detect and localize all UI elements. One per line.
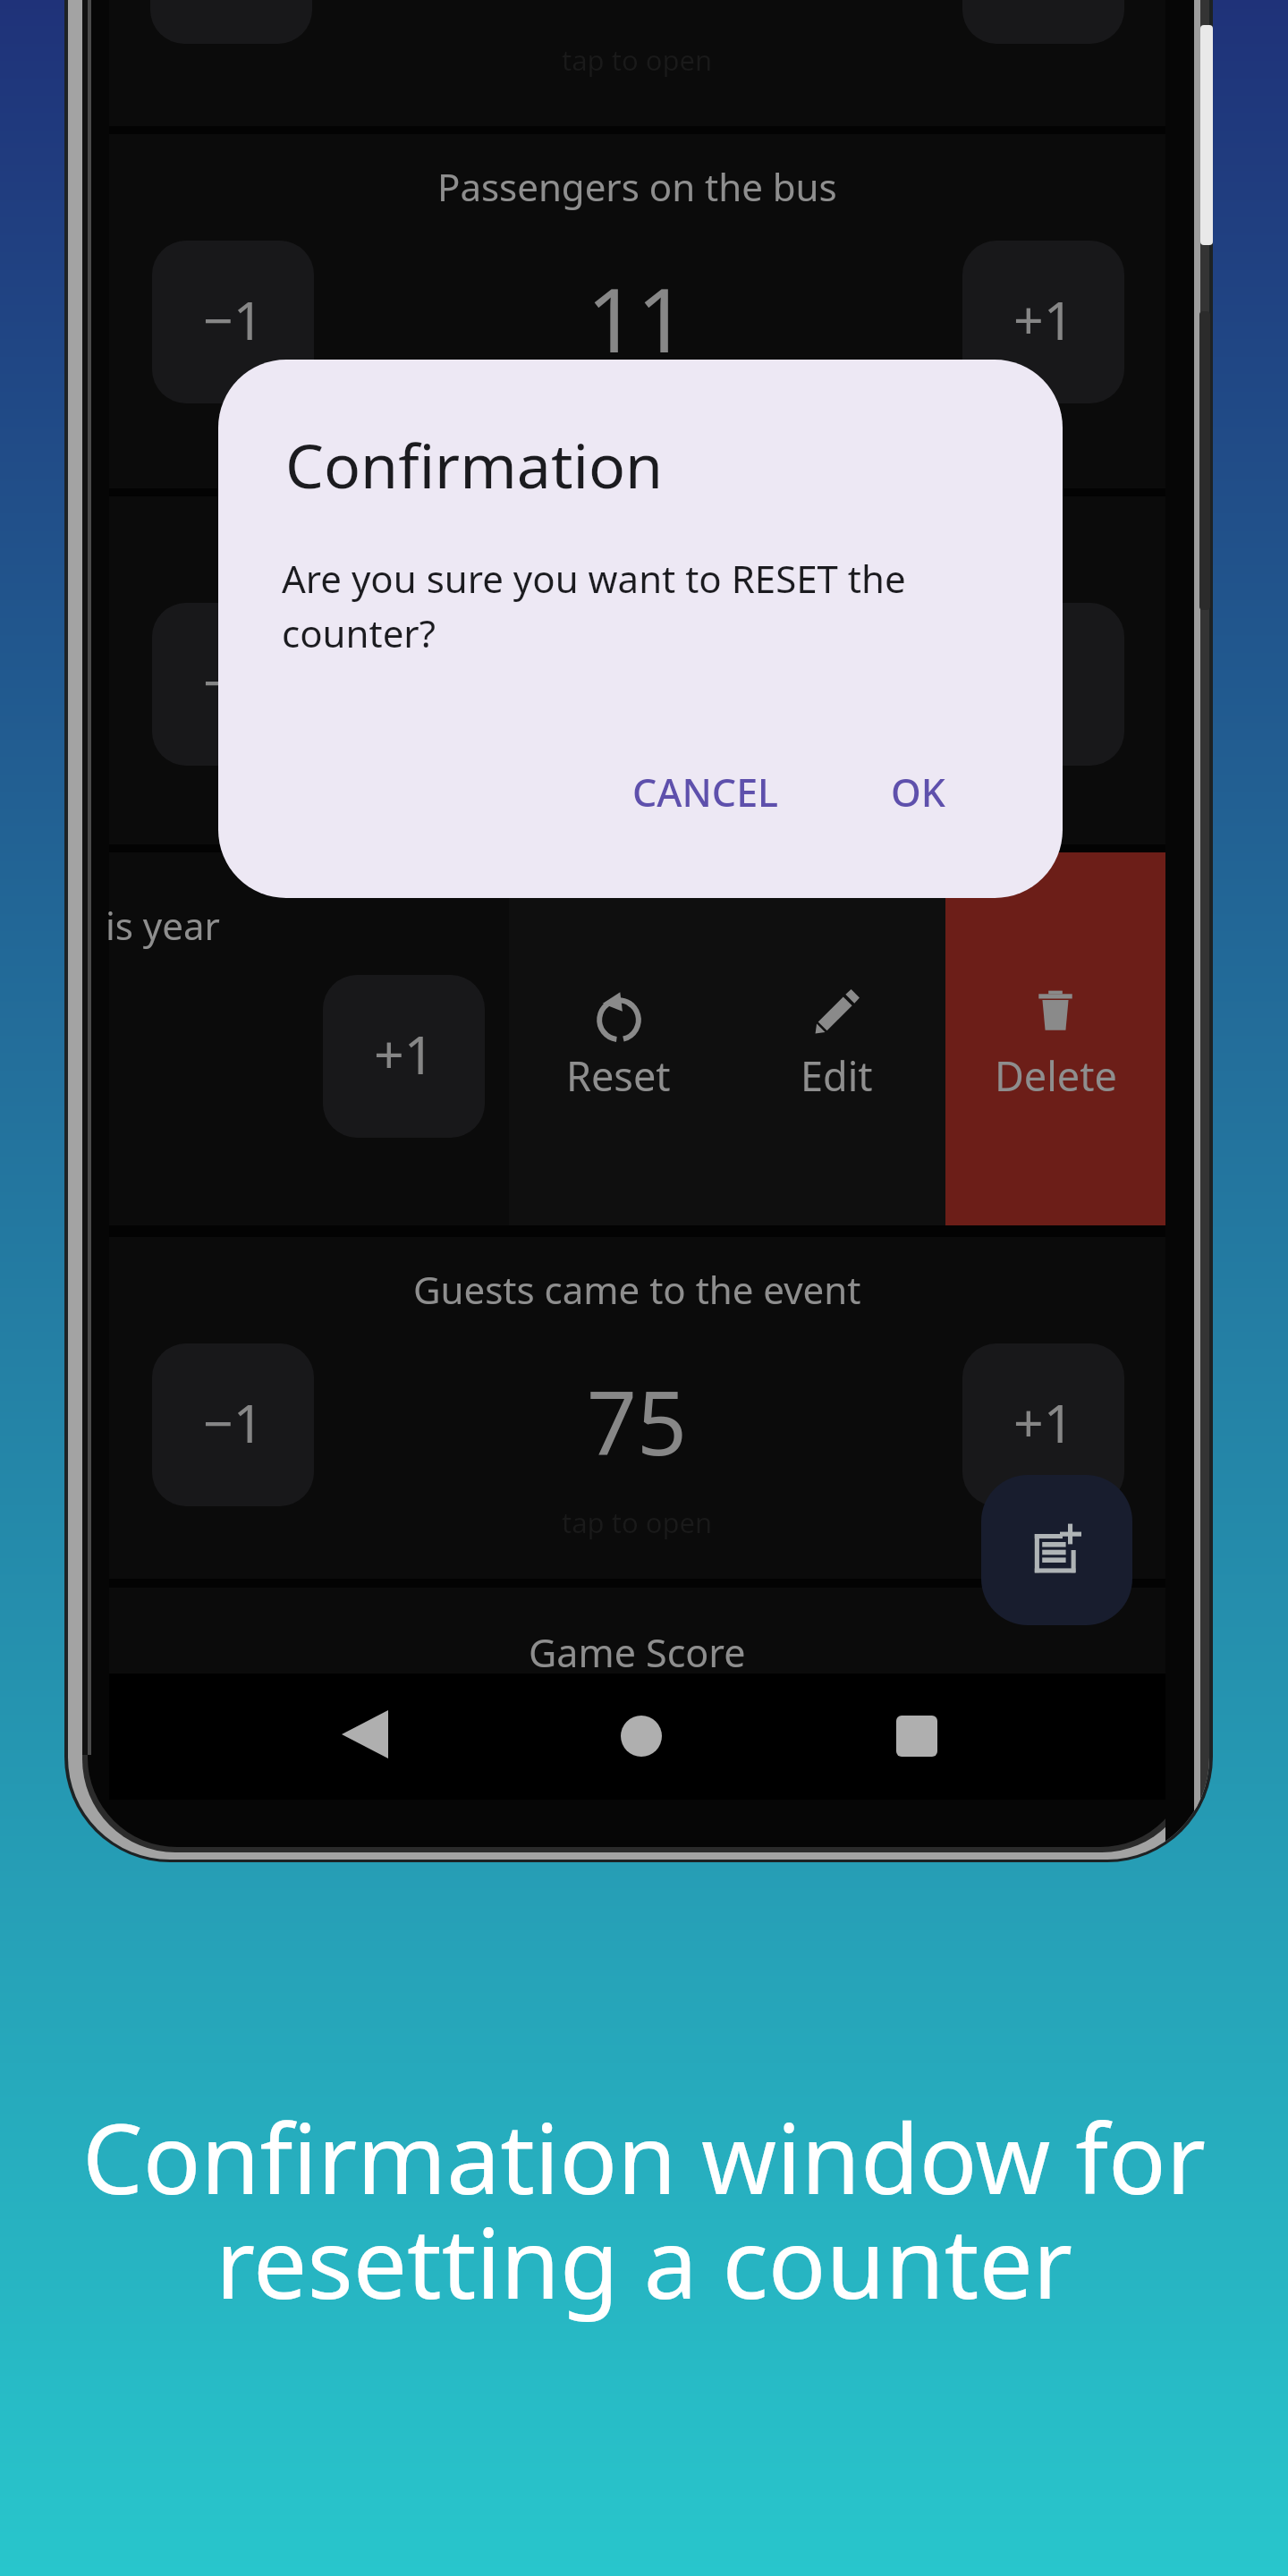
staticText: +1 <box>1013 1386 1074 1458</box>
staticText: −1 <box>203 646 264 717</box>
button[interactable]: Home <box>583 1678 699 1794</box>
button[interactable]: is year <box>109 852 509 1225</box>
button[interactable]: Reset <box>509 852 728 1225</box>
button[interactable]: Delete <box>945 852 1165 1225</box>
button[interactable]: CANCEL <box>613 748 799 836</box>
button[interactable]: Guests came to the event <box>109 1237 1165 1579</box>
button[interactable]: Add counter <box>981 1475 1132 1625</box>
button[interactable]: −1 <box>109 496 1165 844</box>
staticText: Confirmation <box>285 423 664 506</box>
staticText: −1 <box>203 284 264 355</box>
staticText: +1 <box>374 1018 435 1089</box>
button[interactable]: −1 <box>150 0 312 44</box>
button[interactable]: Edit <box>728 852 945 1225</box>
button[interactable]: OK <box>871 748 965 836</box>
button[interactable]: −1 <box>152 241 314 403</box>
staticText: tap to open <box>562 413 713 451</box>
button[interactable]: +1 <box>962 603 1124 766</box>
staticText: Reset <box>566 1048 671 1103</box>
staticText: Confirmation window for <box>82 2092 1206 2223</box>
staticText: −1 <box>203 1386 264 1458</box>
staticText: Edit <box>801 1048 873 1103</box>
staticText: tap to open <box>562 769 713 807</box>
button[interactable]: +1 <box>323 975 485 1138</box>
staticText: Guests came to the event <box>413 1264 861 1315</box>
staticText: +1 <box>1013 284 1074 355</box>
button[interactable]: +1 <box>962 241 1124 403</box>
button[interactable]: Passengers on the bus <box>109 134 1165 488</box>
button[interactable]: +1 <box>962 0 1124 44</box>
staticText: resetting a counter <box>216 2197 1072 2327</box>
staticText: 11 <box>587 258 688 377</box>
staticText: Are you sure you want to RESET the count… <box>282 553 988 658</box>
staticText: +1 <box>1013 646 1074 717</box>
button[interactable]: Back <box>307 1676 423 1792</box>
staticText: is year <box>106 900 220 951</box>
staticText: tap to open <box>562 41 713 79</box>
staticText: 75 <box>587 1361 688 1480</box>
staticText: Passengers on the bus <box>437 161 837 212</box>
staticText: Delete <box>995 1048 1117 1103</box>
button[interactable]: −1 <box>152 603 314 766</box>
button[interactable]: −1 <box>109 0 1165 126</box>
button[interactable]: Game Score <box>109 1588 1165 1674</box>
button[interactable]: +1 <box>962 1343 1124 1506</box>
staticText: tap to open <box>562 1504 713 1541</box>
button[interactable]: −1 <box>152 1343 314 1506</box>
button[interactable]: Recents <box>859 1678 975 1794</box>
staticText: Game Score <box>529 1626 746 1679</box>
